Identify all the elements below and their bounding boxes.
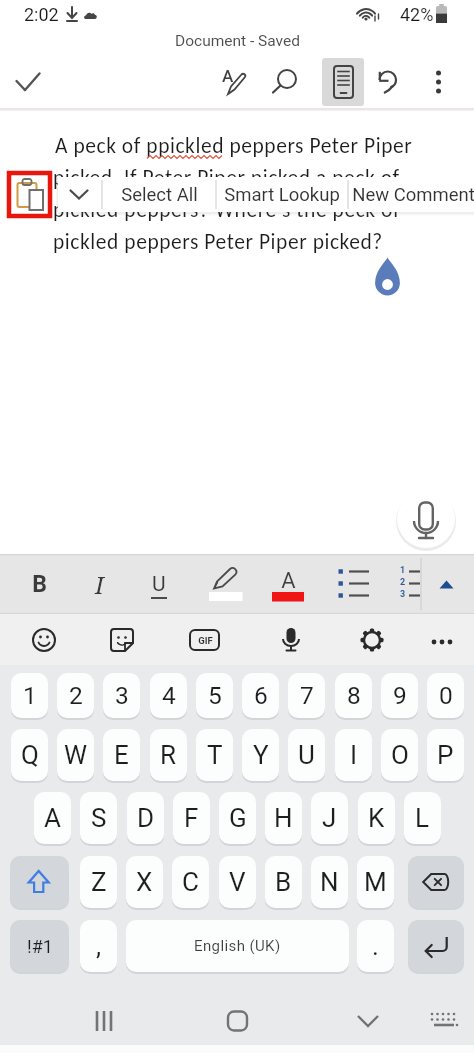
staticText: B xyxy=(32,571,47,598)
staticText: Smart Lookup xyxy=(224,184,340,206)
button[interactable]: R xyxy=(150,729,187,781)
staticText: 3 xyxy=(400,589,406,600)
button[interactable] xyxy=(202,560,250,608)
button[interactable]: X xyxy=(126,856,163,908)
button[interactable]: L xyxy=(404,792,441,844)
staticText: V xyxy=(229,867,246,897)
button[interactable]: O xyxy=(381,729,418,781)
button[interactable] xyxy=(349,616,395,663)
button[interactable]: K xyxy=(358,792,395,844)
button[interactable]: A xyxy=(34,792,71,844)
button[interactable] xyxy=(212,62,252,102)
button[interactable]: U xyxy=(135,560,183,608)
button[interactable]: E xyxy=(103,729,140,781)
button[interactable] xyxy=(99,616,145,663)
staticText: Y xyxy=(253,740,269,770)
button[interactable]: !#1 xyxy=(10,920,69,972)
staticText: F xyxy=(184,803,199,833)
button[interactable]: J xyxy=(311,792,348,844)
button[interactable]: B xyxy=(15,560,63,608)
button[interactable]: U xyxy=(288,729,325,781)
button[interactable] xyxy=(417,616,463,663)
button[interactable] xyxy=(10,62,50,102)
button[interactable]: I xyxy=(335,729,372,781)
button[interactable] xyxy=(408,920,464,972)
staticText: E xyxy=(114,740,129,770)
button[interactable] xyxy=(181,616,227,663)
staticText: 9 xyxy=(393,681,407,710)
staticText: A xyxy=(281,568,296,594)
button[interactable] xyxy=(74,995,134,1047)
button[interactable]: 9 xyxy=(381,673,418,718)
button[interactable]: Z xyxy=(80,856,117,908)
button[interactable] xyxy=(420,62,460,102)
staticText: 2 xyxy=(69,681,83,710)
button[interactable]: N xyxy=(311,856,348,908)
button[interactable]: 3 xyxy=(103,673,140,718)
staticText: U xyxy=(298,740,315,770)
button[interactable]: 4 xyxy=(150,673,187,718)
button[interactable] xyxy=(392,560,436,608)
button[interactable]: 2 xyxy=(57,673,94,718)
button[interactable]: 7 xyxy=(288,673,325,718)
staticText: J xyxy=(322,803,337,833)
button[interactable] xyxy=(9,173,50,216)
button[interactable]: T xyxy=(196,729,233,781)
staticText: N xyxy=(320,867,339,897)
button[interactable]: D xyxy=(127,792,164,844)
button[interactable] xyxy=(408,856,464,908)
button[interactable] xyxy=(21,616,67,663)
staticText: L xyxy=(415,803,430,833)
button[interactable] xyxy=(428,560,468,608)
button[interactable]: New Comment xyxy=(345,177,474,212)
button[interactable]: Y xyxy=(242,729,279,781)
button[interactable]: M xyxy=(357,856,394,908)
staticText: X xyxy=(136,867,153,897)
button[interactable]: 1 xyxy=(11,673,48,718)
staticText: pickled peppers? Where's the peck of xyxy=(53,197,401,223)
button[interactable]: Smart Lookup xyxy=(216,177,348,212)
button[interactable]: G xyxy=(219,792,256,844)
button[interactable]: Q xyxy=(11,729,48,781)
button[interactable]: Select All xyxy=(102,177,216,212)
staticText: H xyxy=(274,803,293,833)
button[interactable] xyxy=(396,489,456,549)
button[interactable]: H xyxy=(265,792,302,844)
button[interactable] xyxy=(330,560,378,608)
button[interactable] xyxy=(265,62,305,102)
button[interactable]: 6 xyxy=(242,673,279,718)
button[interactable] xyxy=(414,995,474,1047)
button[interactable] xyxy=(207,995,267,1047)
button[interactable]: , xyxy=(80,920,117,972)
button[interactable]: S xyxy=(80,792,117,844)
button[interactable]: 5 xyxy=(196,673,233,718)
button[interactable]: 0 xyxy=(427,673,464,718)
button[interactable] xyxy=(322,58,364,106)
staticText: A xyxy=(222,66,234,86)
button[interactable] xyxy=(58,177,102,212)
staticText: T xyxy=(207,740,223,770)
button[interactable] xyxy=(268,616,314,663)
button[interactable]: A xyxy=(266,559,310,603)
staticText: GIF xyxy=(198,635,213,646)
staticText: Select All xyxy=(121,184,198,206)
button[interactable]: C xyxy=(172,856,209,908)
staticText: English (UK) xyxy=(194,937,281,955)
button[interactable]: I xyxy=(75,560,123,608)
button[interactable] xyxy=(10,856,69,908)
staticText: D xyxy=(137,803,155,833)
staticText: W xyxy=(64,740,88,770)
button[interactable]: English (UK) xyxy=(126,920,349,972)
staticText: 1 xyxy=(400,565,406,576)
button[interactable]: W xyxy=(57,729,94,781)
button[interactable]: F xyxy=(173,792,210,844)
button[interactable]: . xyxy=(357,920,394,972)
staticText: !#1 xyxy=(27,936,53,957)
button[interactable]: B xyxy=(265,856,302,908)
button[interactable]: P xyxy=(427,729,464,781)
button[interactable] xyxy=(338,995,398,1047)
button[interactable] xyxy=(368,62,408,102)
button[interactable]: V xyxy=(219,856,256,908)
button[interactable]: 8 xyxy=(335,673,372,718)
staticText: 3 xyxy=(115,681,129,710)
